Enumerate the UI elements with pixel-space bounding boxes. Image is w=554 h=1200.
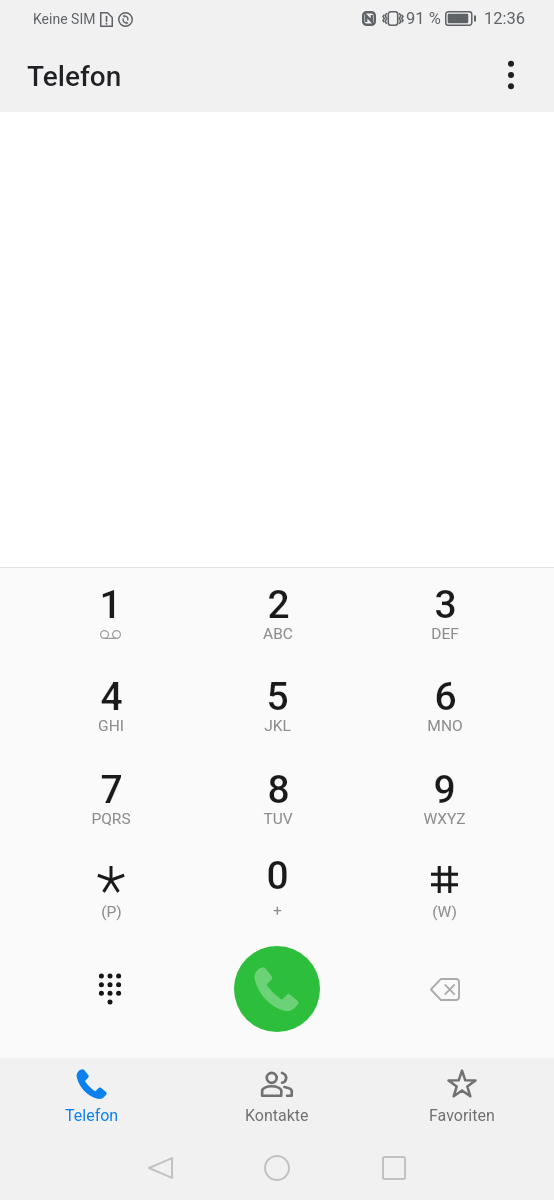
staticText: 6 xyxy=(434,674,457,720)
button[interactable]: Recents xyxy=(370,1144,418,1192)
button[interactable]: 6 xyxy=(361,662,528,755)
staticText: (P) xyxy=(101,903,122,921)
button[interactable]: Favoriten xyxy=(369,1058,554,1136)
staticText: 0 xyxy=(266,853,289,899)
staticText: 1 xyxy=(99,582,122,628)
staticText: + xyxy=(273,902,282,920)
staticText: 12:36 xyxy=(484,9,526,28)
staticText: WXYZ xyxy=(423,810,466,828)
staticText: Telefon xyxy=(27,60,122,93)
button[interactable]: 4 xyxy=(27,662,194,755)
staticText: 2 xyxy=(267,582,290,628)
staticText: 3 xyxy=(434,582,457,628)
button[interactable]: Call xyxy=(234,946,320,1032)
staticText: 9 xyxy=(433,767,456,813)
staticText: 91 % xyxy=(406,9,441,28)
button[interactable]: Kontakte xyxy=(184,1058,369,1136)
staticText: TUV xyxy=(263,810,293,828)
staticText: PQRS xyxy=(91,810,131,828)
staticText: (W) xyxy=(432,903,457,921)
staticText: 8 xyxy=(267,767,290,813)
button[interactable]: 8 xyxy=(194,755,361,842)
staticText: DEF xyxy=(431,625,459,643)
staticText: Telefon xyxy=(65,1106,119,1125)
button[interactable]: 0 xyxy=(194,838,361,926)
button[interactable]: 1 xyxy=(27,570,194,662)
button[interactable]: Home xyxy=(253,1144,301,1192)
button[interactable]: Dialpad xyxy=(81,960,139,1018)
staticText: Keine SIM xyxy=(33,11,96,27)
button[interactable]: (P) xyxy=(27,838,194,926)
button[interactable]: 7 xyxy=(27,755,194,842)
staticText: ABC xyxy=(263,625,293,643)
button[interactable]: 5 xyxy=(194,662,361,755)
staticText: Kontakte xyxy=(245,1106,309,1125)
staticText: 5 xyxy=(266,674,289,720)
button[interactable]: More options xyxy=(489,53,533,97)
staticText: MNO xyxy=(427,717,463,735)
staticText: 4 xyxy=(100,674,123,720)
button[interactable]: 3 xyxy=(361,570,528,662)
button[interactable]: 9 xyxy=(361,755,528,842)
staticText: Favoriten xyxy=(429,1106,495,1125)
staticText: JKL xyxy=(264,717,291,735)
button[interactable]: Backspace xyxy=(415,960,473,1018)
staticText: GHI xyxy=(98,717,124,735)
button[interactable]: (W) xyxy=(361,838,528,926)
button[interactable]: Telefon xyxy=(0,1058,184,1136)
button[interactable]: Back xyxy=(136,1144,184,1192)
button[interactable]: 2 xyxy=(194,570,361,662)
staticText: 7 xyxy=(100,767,123,813)
